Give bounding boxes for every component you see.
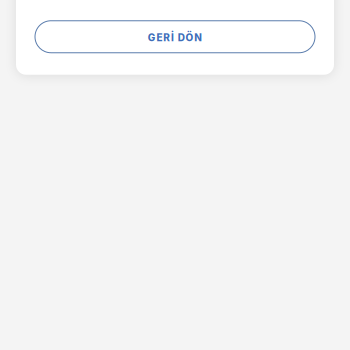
staticText: GERİ DÖN <box>148 31 202 44</box>
button[interactable]: GERİ DÖN <box>35 21 315 53</box>
